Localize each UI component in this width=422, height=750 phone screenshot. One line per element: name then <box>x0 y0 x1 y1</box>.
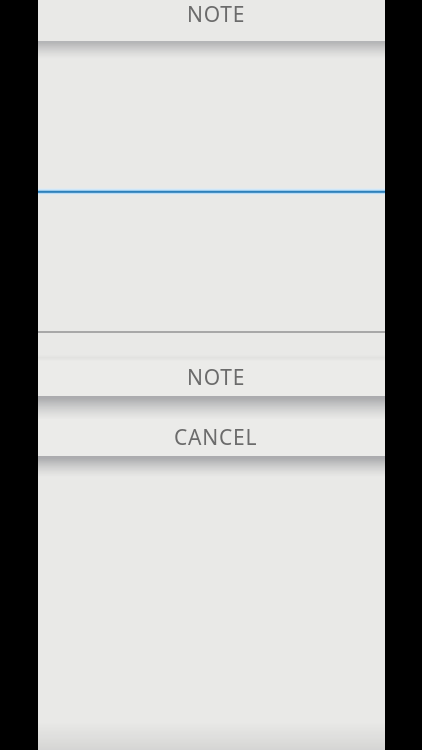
button[interactable]: CANCEL <box>38 419 385 456</box>
staticText: CANCEL <box>174 423 258 452</box>
staticText: NOTE <box>187 363 246 392</box>
button[interactable]: Note text field <box>38 58 385 192</box>
button[interactable]: NOTE <box>38 358 385 396</box>
staticText: NOTE <box>187 0 246 29</box>
